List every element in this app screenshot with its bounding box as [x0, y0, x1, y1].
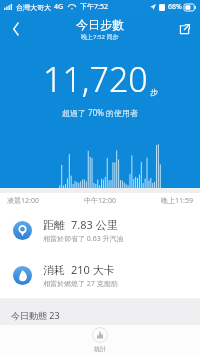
staticText: 晚上7:52 同步 — [81, 33, 119, 41]
staticText: 下午7:52 — [80, 2, 108, 12]
button[interactable]: 統計 — [80, 325, 120, 355]
staticText: 中午12:00 — [84, 196, 116, 206]
staticText: 4G — [54, 2, 64, 12]
staticText: 超過了 70% 的使用者 — [62, 107, 138, 118]
staticText: 距離 — [43, 218, 65, 232]
button[interactable]: Back — [0, 14, 32, 44]
staticText: 台灣大哥大 — [16, 3, 51, 12]
staticText: 統計 — [94, 345, 106, 353]
staticText: 今日步數 — [76, 17, 124, 32]
staticText: 今日動態 23 — [11, 309, 60, 321]
button[interactable]: 消耗 — [0, 253, 200, 298]
staticText: 相當於節省了 0.63 升汽油 — [43, 234, 124, 244]
button[interactable]: 距離 — [0, 208, 200, 253]
staticText: 210 大卡 — [71, 262, 115, 277]
button[interactable]: Share — [168, 14, 200, 44]
staticText: 晚上11:59 — [161, 196, 193, 206]
staticText: 11,720 — [43, 56, 148, 102]
staticText: 凌晨12:00 — [7, 196, 39, 206]
staticText: 消耗 — [43, 263, 65, 277]
staticText: 步 — [150, 87, 158, 97]
staticText: 相當於燃燒了 27 克脂肪 — [43, 279, 118, 289]
staticText: 68% — [168, 2, 182, 12]
staticText: 7.83 公里 — [71, 217, 118, 232]
